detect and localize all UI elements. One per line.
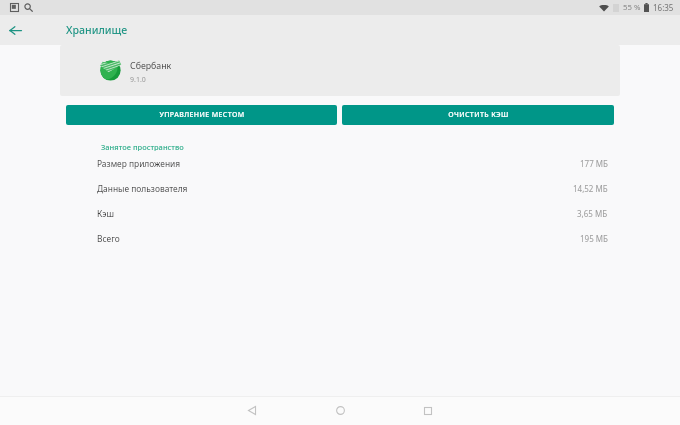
button[interactable]: Кэш bbox=[0, 201, 680, 226]
button[interactable]: Размер приложения bbox=[0, 151, 680, 176]
button[interactable]: Данные пользователя bbox=[0, 176, 680, 201]
staticText: Кэш bbox=[97, 208, 114, 219]
staticText: Сбербанк bbox=[130, 60, 172, 72]
staticText: 55 % bbox=[623, 2, 641, 13]
staticText: Хранилище bbox=[66, 23, 128, 37]
button[interactable]: Screenshot bbox=[10, 3, 19, 12]
staticText: Всего bbox=[97, 233, 120, 244]
staticText: 177 МБ bbox=[580, 158, 608, 169]
button[interactable]: Home bbox=[322, 396, 358, 425]
button[interactable]: Всего bbox=[0, 226, 680, 251]
staticText: 14,52 МБ bbox=[573, 183, 608, 194]
button[interactable]: Back bbox=[234, 396, 270, 425]
staticText: 195 МБ bbox=[580, 233, 608, 244]
staticText: 16:35 bbox=[653, 2, 674, 13]
button[interactable]: Search bbox=[24, 3, 33, 12]
button[interactable]: Сбербанк bbox=[60, 45, 620, 96]
button[interactable]: Back bbox=[2, 17, 28, 43]
staticText: Занятое пространство bbox=[101, 142, 184, 151]
staticText: ОЧИСТИТЬ КЭШ bbox=[448, 110, 509, 120]
button[interactable]: Recent apps bbox=[410, 396, 446, 425]
staticText: 3,65 МБ bbox=[577, 208, 608, 219]
staticText: 9.1.0 bbox=[130, 75, 146, 85]
staticText: УПРАВЛЕНИЕ МЕСТОМ bbox=[159, 110, 245, 120]
staticText: Данные пользователя bbox=[97, 183, 188, 194]
button[interactable]: УПРАВЛЕНИЕ МЕСТОМ bbox=[66, 105, 337, 125]
button[interactable]: ОЧИСТИТЬ КЭШ bbox=[342, 105, 614, 125]
staticText: Размер приложения bbox=[97, 158, 181, 169]
